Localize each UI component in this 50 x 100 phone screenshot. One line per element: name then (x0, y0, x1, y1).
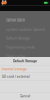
staticText: Default Storage (6, 37, 30, 40)
staticText: Cancel (19, 94, 30, 98)
button[interactable]: Cancel (19, 92, 30, 100)
staticText: Speak Back (6, 18, 25, 22)
staticText: Speech (33, 28, 45, 31)
staticText: system updates (6, 28, 32, 31)
staticText: SD card / external (2, 75, 30, 78)
staticText: 9:41 (2, 0, 7, 6)
button[interactable]: SD card / external (0, 73, 50, 80)
staticText: Clear cache (6, 54, 25, 58)
staticText: Default Storage (13, 59, 37, 63)
button[interactable]: Internal storage (0, 66, 50, 73)
staticText: Internal storage (2, 67, 27, 71)
staticText: Engineering mode (6, 46, 35, 49)
